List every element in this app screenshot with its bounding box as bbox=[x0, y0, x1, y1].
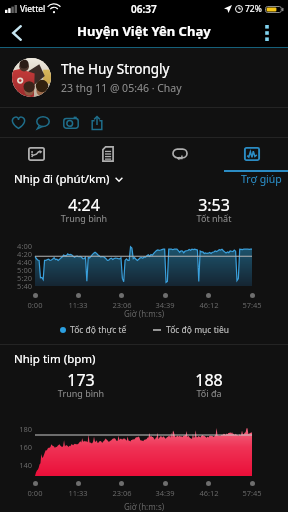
button[interactable]: Details bbox=[72, 138, 144, 170]
staticText: Nhịp tim (bpm) bbox=[14, 351, 96, 367]
staticText: 4:20 bbox=[0, 249, 32, 259]
button[interactable]: Laps bbox=[144, 138, 216, 170]
staticText: Giờ (h:m:s) bbox=[0, 501, 288, 512]
staticText: 23 thg 11 @ 05:46 · Chay bbox=[61, 81, 182, 95]
staticText: Trợ giúp bbox=[241, 172, 282, 186]
staticText: 57:45 bbox=[236, 488, 268, 498]
button[interactable]: Share bbox=[84, 108, 110, 137]
button[interactable]: Back bbox=[0, 18, 34, 47]
staticText: 5:20 bbox=[0, 273, 32, 283]
staticText: 180 bbox=[0, 424, 32, 434]
button[interactable]: Map bbox=[0, 138, 72, 170]
staticText: 188 bbox=[145, 369, 273, 391]
staticText: 34:39 bbox=[149, 300, 181, 310]
button[interactable]: Charts bbox=[216, 138, 288, 170]
staticText: Huyện Việt Yên Chạy bbox=[77, 22, 211, 40]
staticText: 11:33 bbox=[62, 488, 94, 498]
button[interactable]: Trợ giúp bbox=[241, 172, 282, 186]
button[interactable]: The Huy Strongly bbox=[0, 48, 288, 107]
staticText: Trung bình bbox=[20, 212, 148, 224]
button[interactable]: Add photo bbox=[58, 108, 84, 137]
staticText: 46:12 bbox=[193, 300, 225, 310]
staticText: 4:40 bbox=[0, 257, 32, 267]
staticText: 5:00 bbox=[0, 265, 32, 275]
button[interactable]: Comment bbox=[30, 108, 56, 137]
staticText: Trung bình bbox=[17, 387, 145, 399]
staticText: 23:06 bbox=[106, 488, 138, 498]
staticText: Viettel bbox=[20, 3, 46, 15]
staticText: 34:39 bbox=[149, 488, 181, 498]
staticText: 0:00 bbox=[19, 300, 51, 310]
staticText: 06:37 bbox=[131, 2, 157, 16]
staticText: 57:45 bbox=[236, 300, 268, 310]
staticText: 0:00 bbox=[19, 488, 51, 498]
staticText: 72% bbox=[245, 3, 262, 15]
staticText: 173 bbox=[17, 369, 145, 391]
staticText: Tối đa bbox=[145, 387, 273, 399]
staticText: 4:24 bbox=[20, 194, 148, 216]
staticText: 160 bbox=[0, 442, 32, 452]
staticText: 3:53 bbox=[150, 194, 278, 216]
staticText: Tốc độ mục tiêu bbox=[166, 324, 229, 336]
staticText: 46:12 bbox=[193, 488, 225, 498]
staticText: 140 bbox=[0, 460, 32, 470]
button[interactable]: More options bbox=[245, 18, 288, 47]
staticText: 23:06 bbox=[106, 300, 138, 310]
staticText: 5:40 bbox=[0, 281, 32, 291]
button[interactable]: Like bbox=[5, 108, 31, 137]
staticText: Tốt nhất bbox=[150, 212, 278, 224]
staticText: The Huy Strongly bbox=[61, 60, 170, 78]
staticText: Tốc độ thực tế bbox=[70, 324, 127, 336]
button[interactable]: Nhịp đi (phút/km) bbox=[14, 171, 123, 187]
staticText: 4:00 bbox=[0, 241, 32, 251]
staticText: Giờ (h:m:s) bbox=[0, 308, 288, 319]
staticText: 11:33 bbox=[62, 300, 94, 310]
staticText: Nhịp đi (phút/km) bbox=[14, 171, 110, 187]
